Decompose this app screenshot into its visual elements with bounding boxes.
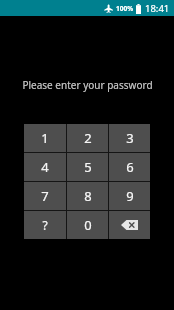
button[interactable]: 2 — [67, 124, 108, 152]
button[interactable]: 8 — [67, 182, 108, 210]
button[interactable]: 9 — [109, 182, 150, 210]
staticText: 2 — [84, 129, 92, 147]
button[interactable]: 6 — [109, 153, 150, 181]
staticText: Please enter your password — [22, 78, 153, 92]
staticText: 5 — [84, 158, 92, 176]
staticText: ? — [42, 217, 48, 233]
button[interactable]: 1 — [24, 124, 66, 152]
staticText: 6 — [126, 158, 134, 176]
button[interactable]: ? — [24, 211, 66, 239]
button[interactable]: 7 — [24, 182, 66, 210]
button[interactable]: Backspace — [109, 211, 150, 239]
staticText: 7 — [41, 187, 49, 205]
staticText: 3 — [126, 129, 134, 147]
staticText: 0 — [84, 216, 92, 234]
button[interactable]: 4 — [24, 153, 66, 181]
button[interactable]: 0 — [67, 211, 108, 239]
staticText: 9 — [126, 187, 134, 205]
button[interactable]: 5 — [67, 153, 108, 181]
staticText: 1 — [41, 129, 49, 147]
staticText: 4 — [41, 158, 49, 176]
staticText: 18:41 — [145, 2, 170, 15]
staticText: 8 — [84, 187, 92, 205]
button[interactable]: 3 — [109, 124, 150, 152]
staticText: 100% — [116, 4, 134, 13]
